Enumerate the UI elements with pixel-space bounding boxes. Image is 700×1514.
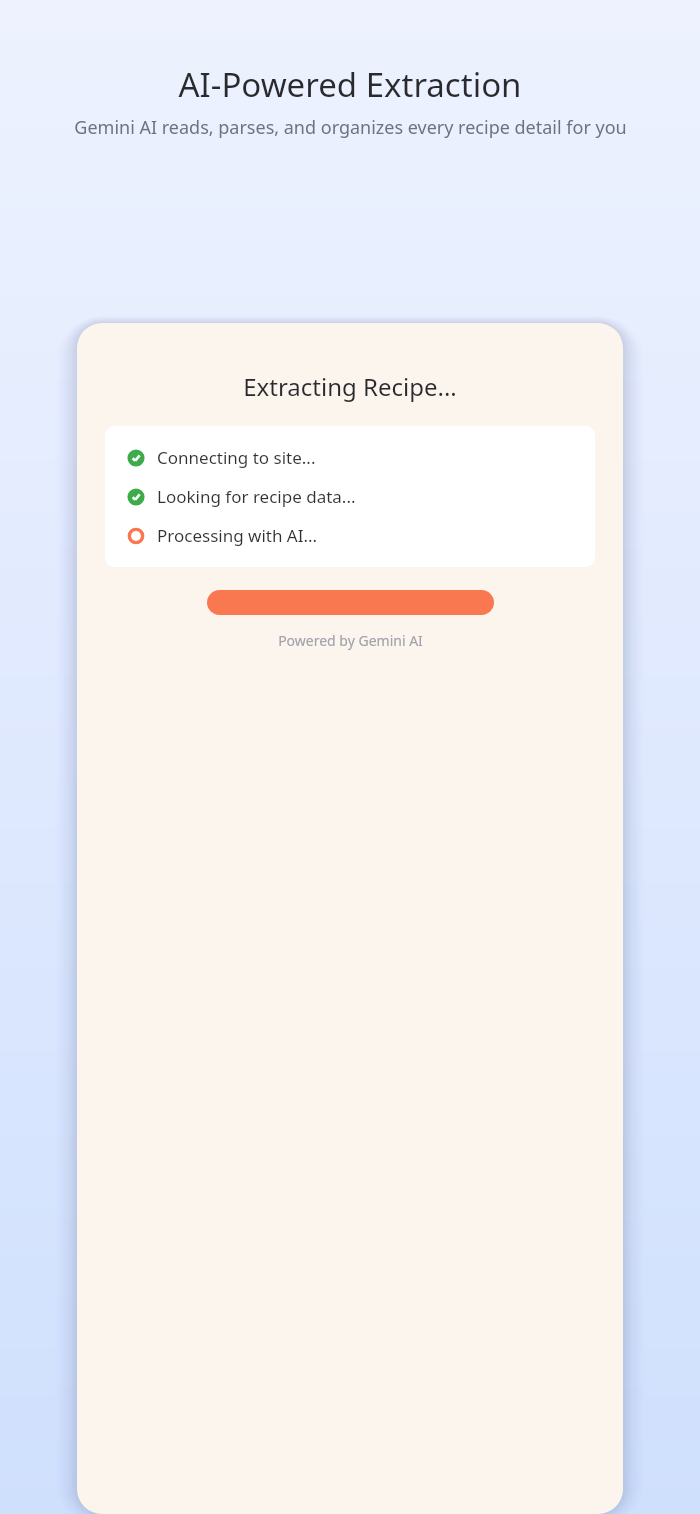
other: Step complete: [125, 447, 147, 469]
other: Step in progress: [125, 525, 147, 547]
button[interactable]: Step complete: [125, 485, 575, 508]
staticText: Processing with AI...: [157, 524, 318, 547]
staticText: Looking for recipe data...: [157, 485, 356, 508]
button[interactable]: Step complete: [125, 446, 575, 469]
staticText: Powered by Gemini AI: [278, 631, 423, 650]
staticText: Extracting Recipe...: [243, 370, 457, 403]
staticText: Connecting to site...: [157, 446, 316, 469]
other: Step complete: [125, 486, 147, 508]
button[interactable]: [207, 590, 494, 615]
button[interactable]: Step in progress: [125, 524, 575, 547]
staticText: AI-Powered Extraction: [178, 62, 522, 107]
staticText: Gemini AI reads, parses, and organizes e…: [74, 115, 627, 140]
